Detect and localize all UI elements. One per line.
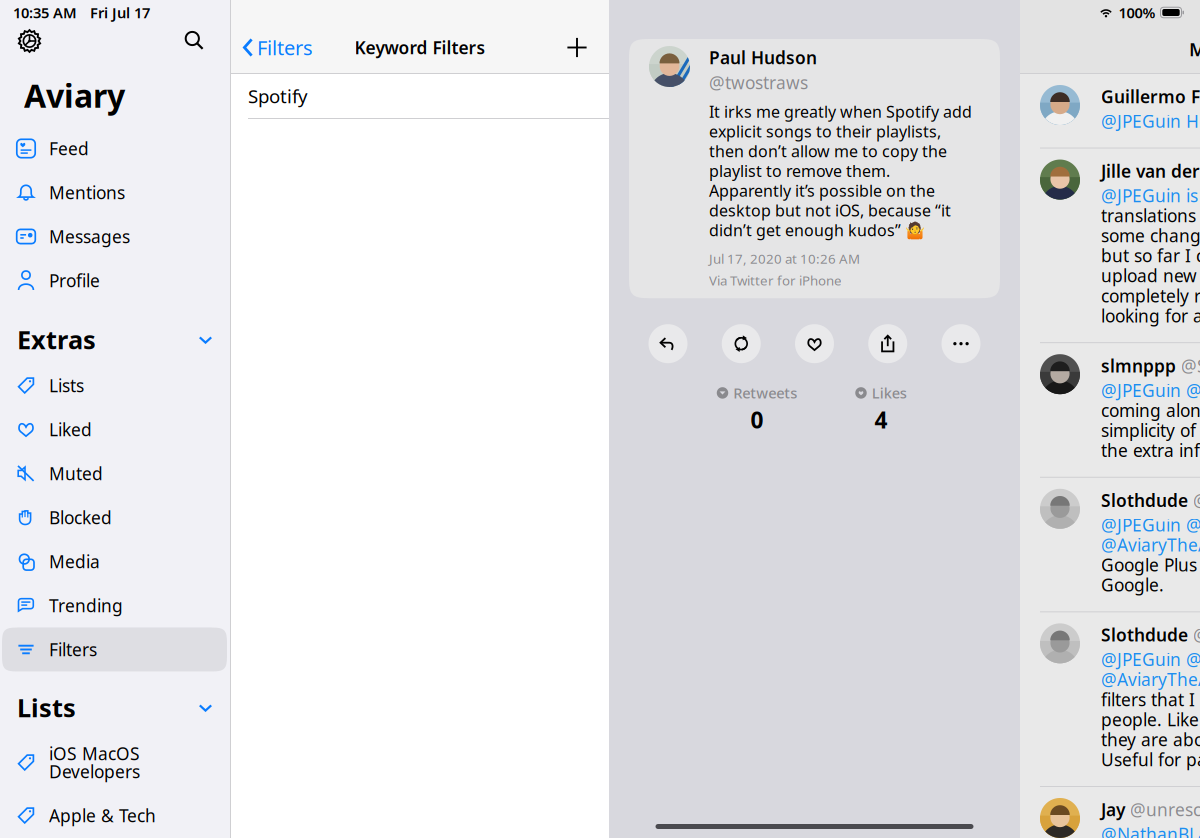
staticText: @JPEGuin @	[1101, 513, 1200, 536]
staticText: Mentions	[49, 181, 125, 204]
staticText: Likes	[872, 383, 907, 403]
staticText: @NathanBLa	[1101, 822, 1200, 838]
button[interactable]: Blocked	[2, 495, 227, 539]
staticText: @JPEGuin @	[1101, 648, 1200, 671]
staticText: It irks me greatly when Spotify add expl…	[709, 101, 972, 241]
staticText: @AviaryTheA	[1101, 668, 1200, 691]
staticText: Via Twitter for iPhone	[709, 271, 842, 289]
staticText: Spotify	[248, 84, 308, 108]
button[interactable]: Feed	[2, 126, 227, 170]
staticText: Google Plus c	[1101, 553, 1200, 576]
staticText: the extra info	[1101, 439, 1200, 462]
button[interactable]: Muted	[2, 451, 227, 495]
staticText: looking for a	[1101, 304, 1200, 327]
button[interactable]: Jille van der	[1020, 148, 1200, 342]
button[interactable]: Add filter	[561, 31, 609, 63]
staticText: some change	[1101, 224, 1200, 247]
staticText: Mentions	[1189, 37, 1200, 61]
button[interactable]: iOS MacOS	[2, 731, 227, 793]
button[interactable]: Apple & Tech	[2, 793, 227, 837]
staticText: Messages	[49, 225, 130, 248]
staticText: @JPEGuin Ho	[1101, 109, 1200, 132]
staticText: Trending	[49, 594, 123, 617]
button[interactable]: Profile	[2, 258, 227, 302]
staticText: Media	[49, 550, 100, 573]
staticText: 100%	[1118, 3, 1155, 22]
button[interactable]: Media	[2, 539, 227, 583]
staticText: Lists	[49, 374, 84, 397]
staticText: iOS MacOS	[49, 742, 140, 765]
staticText: Apple & Tech	[49, 804, 156, 827]
staticText: simplicity of t	[1101, 419, 1200, 442]
staticText: @JPEGuin is	[1101, 184, 1198, 207]
button[interactable]: Filters	[2, 627, 227, 671]
button[interactable]: Spotify	[231, 74, 609, 118]
button[interactable]: Reply	[648, 324, 687, 363]
staticText: coming along	[1101, 399, 1200, 422]
button[interactable]: Like	[795, 324, 834, 363]
button[interactable]: Settings	[11, 25, 48, 57]
staticText: Liked	[49, 418, 92, 441]
staticText: Slothdude	[1101, 489, 1188, 512]
staticText: @unresc	[1130, 798, 1200, 821]
staticText: 4	[874, 405, 887, 435]
staticText: upload new .s	[1101, 264, 1200, 287]
staticText: but so far I ca	[1101, 244, 1200, 267]
button[interactable]: Extras	[2, 315, 227, 363]
staticText: Aviary	[24, 74, 125, 116]
staticText: @S	[1181, 354, 1200, 377]
staticText: slmnppp	[1101, 354, 1176, 377]
button[interactable]: Share	[868, 324, 907, 363]
button[interactable]: Liked	[2, 407, 227, 451]
staticText: Paul Hudson	[709, 46, 817, 69]
staticText: filters that I c	[1101, 688, 1200, 711]
staticText: Slothdude	[1101, 623, 1188, 646]
staticText: @	[1193, 489, 1200, 512]
staticText: Jay	[1101, 798, 1125, 821]
staticText: Lists	[17, 691, 76, 724]
staticText: 10:35 AM	[13, 3, 77, 22]
staticText: Keyword Filters	[354, 36, 485, 59]
staticText: Jille van der	[1101, 159, 1200, 182]
staticText: Developers	[49, 760, 140, 783]
button[interactable]: Retweet	[722, 324, 761, 363]
button[interactable]: More	[941, 324, 980, 363]
staticText: @twostraws	[709, 71, 808, 94]
staticText: Muted	[49, 462, 103, 485]
staticText: Jul 17, 2020 at 10:26 AM	[709, 250, 860, 267]
button[interactable]: Search	[176, 25, 213, 57]
staticText: 0	[750, 405, 763, 435]
staticText: Feed	[49, 137, 89, 160]
staticText: Google.	[1101, 573, 1164, 596]
button[interactable]: Guillermo Fe	[1020, 74, 1200, 147]
staticText: translations i	[1101, 204, 1200, 227]
staticText: Profile	[49, 269, 100, 292]
staticText: @	[1193, 623, 1200, 646]
button[interactable]: Lists	[2, 363, 227, 407]
staticText: Useful for pa	[1101, 748, 1200, 771]
staticText: completely re	[1101, 284, 1200, 307]
button[interactable]: Jay	[1020, 787, 1200, 838]
staticText: Retweets	[733, 383, 797, 403]
staticText: @JPEGuin @	[1101, 379, 1200, 402]
button[interactable]: Messages	[2, 214, 227, 258]
staticText: Blocked	[49, 506, 112, 529]
staticText: Filters	[257, 34, 313, 61]
button[interactable]: slmnppp	[1020, 343, 1200, 477]
button[interactable]: Trending	[2, 583, 227, 627]
staticText: @AviaryTheA	[1101, 533, 1200, 556]
button[interactable]: Filters	[231, 28, 313, 67]
staticText: Filters	[49, 638, 97, 661]
button[interactable]: Mentions	[2, 170, 227, 214]
staticText: Guillermo Fe	[1101, 85, 1200, 108]
button[interactable]: Slothdude	[1020, 612, 1200, 786]
staticText: people. Like	[1101, 708, 1200, 731]
button[interactable]: Slothdude	[1020, 478, 1200, 611]
staticText: Fri Jul 17	[90, 3, 150, 22]
staticText: they are abov	[1101, 728, 1200, 751]
button[interactable]: Lists	[2, 683, 227, 731]
staticText: Extras	[17, 323, 96, 356]
